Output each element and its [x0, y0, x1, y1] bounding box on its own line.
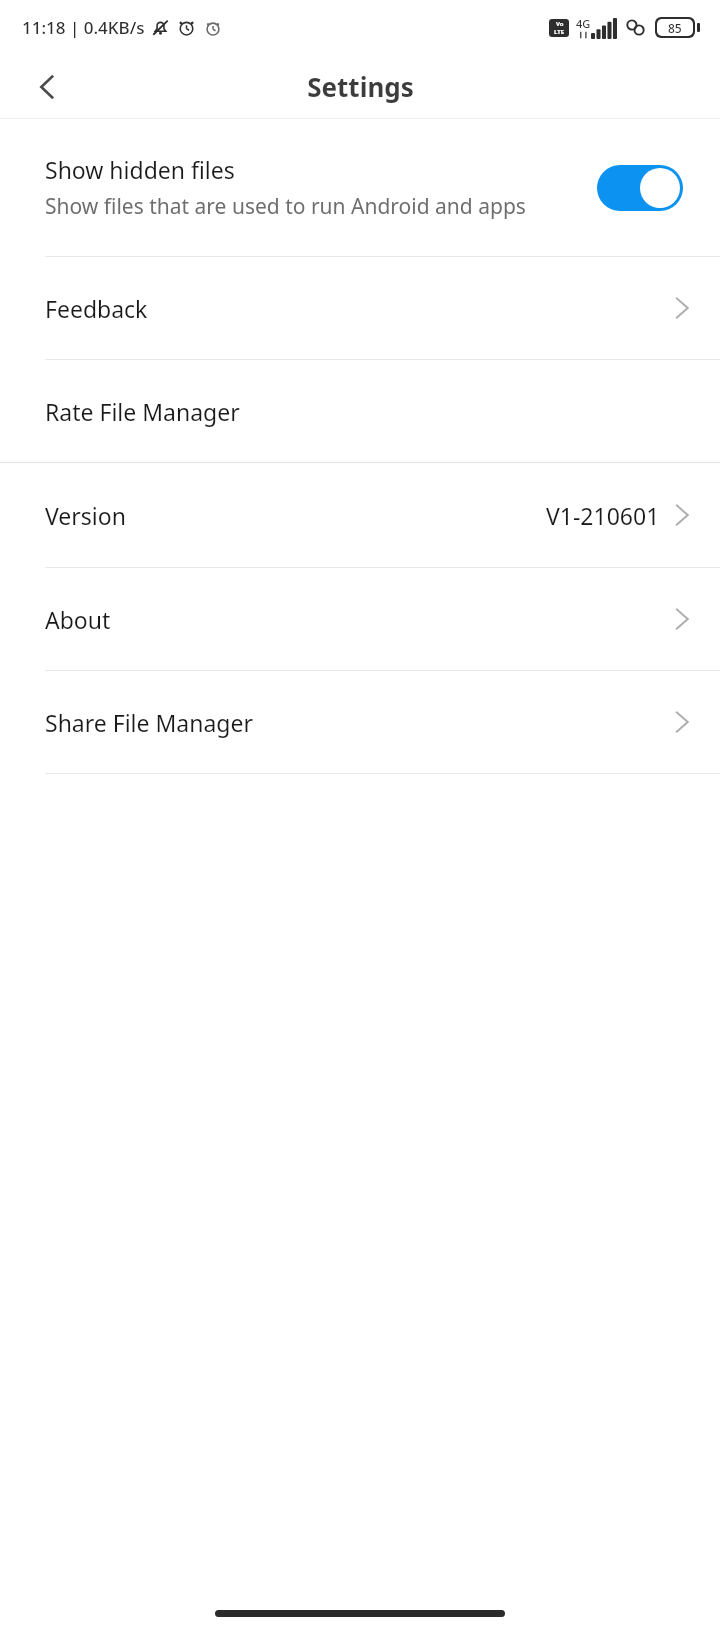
button[interactable]: Rate File Manager: [0, 360, 720, 462]
staticText: 4G: [576, 16, 591, 31]
staticText: Version: [45, 500, 126, 531]
staticText: Show hidden files: [45, 154, 235, 185]
staticText: Share File Manager: [45, 707, 253, 738]
button[interactable]: Show hidden files toggle: [597, 165, 683, 211]
staticText: About: [45, 604, 111, 635]
staticText: Rate File Manager: [45, 396, 240, 427]
staticText: LTE: [554, 28, 565, 36]
staticText: 11:18 | 0.4KB/s: [22, 16, 145, 39]
staticText: V1-210601: [546, 500, 660, 531]
staticText: Feedback: [45, 293, 148, 324]
button[interactable]: Back: [18, 58, 76, 116]
button[interactable]: About: [0, 568, 720, 670]
staticText: Show files that are used to run Android …: [45, 192, 526, 221]
button[interactable]: Version: [0, 463, 720, 567]
button[interactable]: Show hidden files: [0, 119, 720, 256]
staticText: Settings: [307, 69, 414, 104]
staticText: 85: [668, 20, 682, 36]
button[interactable]: Feedback: [0, 257, 720, 359]
button[interactable]: Share File Manager: [0, 671, 720, 773]
staticText: Vo: [556, 20, 564, 28]
